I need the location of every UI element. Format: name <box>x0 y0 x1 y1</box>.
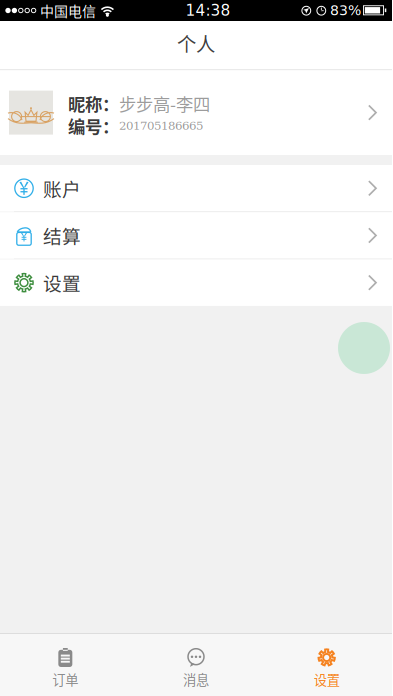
button[interactable]: 设置 <box>261 634 392 696</box>
button[interactable]: 昵称： <box>0 70 392 155</box>
staticText: 14:38 <box>185 2 230 19</box>
staticText: 83% <box>330 2 361 19</box>
staticText: 订单 <box>52 669 78 689</box>
staticText: 昵称： <box>68 91 119 116</box>
button[interactable]: 设置 <box>0 259 392 306</box>
staticText: 账户 <box>43 175 81 202</box>
staticText: 个人 <box>177 29 215 57</box>
button[interactable]: 消息 <box>131 634 261 696</box>
button[interactable]: 结算 <box>0 212 392 259</box>
staticText: 消息 <box>183 669 209 689</box>
button[interactable]: 订单 <box>0 634 131 696</box>
staticText: 结算 <box>43 222 81 249</box>
staticText: 201705186665 <box>119 119 203 132</box>
staticText: 步步高-李四 <box>119 91 210 116</box>
staticText: 设置 <box>43 269 81 296</box>
staticText: 编号： <box>68 113 119 138</box>
staticText: 中国电信 <box>40 0 96 21</box>
button[interactable]: 账户 <box>0 165 392 211</box>
staticText: 设置 <box>314 669 340 689</box>
